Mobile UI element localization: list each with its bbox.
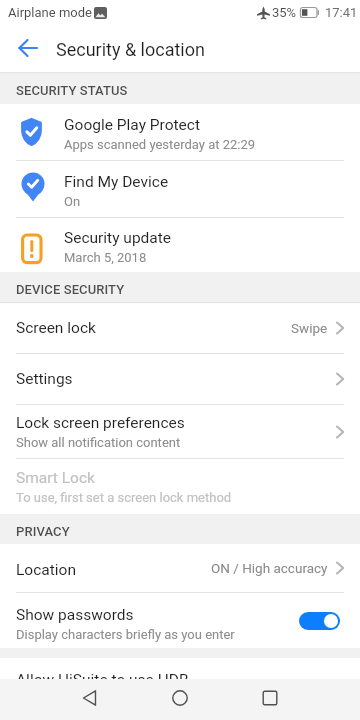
staticText: DEVICE SECURITY — [16, 282, 125, 297]
staticText: Security update — [64, 229, 172, 247]
button[interactable]: Location — [0, 544, 360, 592]
staticText: Swipe — [291, 320, 328, 336]
staticText: 17:41 — [325, 5, 358, 20]
button[interactable] — [248, 677, 292, 718]
button[interactable] — [10, 30, 46, 66]
staticText: Security & location — [56, 39, 205, 60]
button[interactable]: Lock screen preferences — [0, 405, 360, 458]
staticText: 35% — [272, 5, 297, 20]
button[interactable]: Find My Device — [0, 161, 360, 217]
staticText: Lock screen preferences — [16, 414, 185, 432]
staticText: Smart Lock — [16, 469, 95, 487]
button[interactable] — [299, 612, 340, 630]
button[interactable]: Allow HiSuite to use HDB — [0, 658, 360, 720]
staticText: Find My Device — [64, 173, 169, 191]
button[interactable]: Screen lock — [0, 303, 360, 353]
staticText: PRIVACY — [16, 524, 70, 539]
staticText: Display characters briefly as you enter — [16, 627, 235, 642]
staticText: March 5, 2018 — [64, 250, 147, 265]
staticText: Location — [16, 561, 76, 579]
staticText: Airplane mode — [8, 5, 92, 20]
button[interactable]: Google Play Protect — [0, 104, 360, 160]
staticText: Allow HiSuite to use HDB — [16, 671, 189, 689]
staticText: On — [64, 194, 81, 209]
button[interactable]: Settings — [0, 354, 360, 404]
button[interactable]: Security update — [0, 218, 360, 272]
staticText: SECURITY STATUS — [16, 83, 128, 98]
staticText: Apps scanned yesterday at 22:29 — [64, 137, 256, 152]
staticText: To use, first set a screen lock method — [16, 490, 232, 505]
staticText: ON / High accuracy — [211, 560, 328, 576]
staticText: Settings — [16, 370, 73, 388]
button[interactable]: Show passwords — [0, 593, 360, 648]
staticText: Show passwords — [16, 606, 134, 624]
staticText: Screen lock — [16, 319, 96, 337]
staticText: Google Play Protect — [64, 116, 201, 134]
button[interactable] — [158, 677, 202, 718]
staticText: Show all notification content — [16, 435, 181, 450]
button[interactable] — [68, 677, 112, 718]
button[interactable]: Smart Lock — [0, 459, 360, 514]
